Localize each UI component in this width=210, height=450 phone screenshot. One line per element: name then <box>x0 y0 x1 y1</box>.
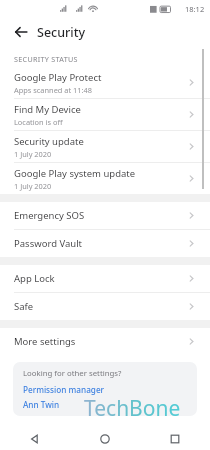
staticText: TechBone <box>84 394 181 423</box>
staticText: 1 July 2020 <box>14 149 52 159</box>
button[interactable]: Password Vault <box>0 230 210 257</box>
button[interactable]: Google Play system update <box>0 163 210 194</box>
staticText: Google Play Protect <box>14 71 102 84</box>
staticText: 18:12 <box>185 4 205 14</box>
staticText: Apps scanned at 11:48 <box>14 85 92 95</box>
button[interactable]: App Lock <box>0 265 210 292</box>
button[interactable]: Ann Twin <box>23 399 60 410</box>
button[interactable]: Back <box>10 21 32 43</box>
button[interactable]: Home <box>70 428 140 450</box>
button[interactable]: Security update <box>0 131 210 162</box>
staticText: More settings <box>14 335 187 348</box>
button[interactable]: Permission manager <box>23 384 105 395</box>
button[interactable]: Recent apps <box>140 428 210 450</box>
button[interactable]: Safe <box>0 293 210 320</box>
button[interactable]: More settings <box>0 328 210 355</box>
button[interactable]: Google Play Protect <box>0 67 210 98</box>
staticText: Google Play system update <box>14 167 136 180</box>
staticText: 1 July 2020 <box>14 181 52 191</box>
staticText: SECURITY STATUS <box>14 54 78 64</box>
staticText: Safe <box>14 300 187 313</box>
button[interactable]: Back <box>0 428 70 450</box>
button[interactable]: Emergency SOS <box>0 202 210 229</box>
staticText: Looking for other settings? <box>23 368 122 379</box>
staticText: Password Vault <box>14 237 187 250</box>
staticText: Security update <box>14 135 84 148</box>
button[interactable]: Find My Device <box>0 99 210 130</box>
staticText: Emergency SOS <box>14 209 187 222</box>
staticText: Security <box>37 24 86 41</box>
staticText: Location is off <box>14 117 63 127</box>
staticText: Find My Device <box>14 103 81 116</box>
staticText: App Lock <box>14 272 187 285</box>
